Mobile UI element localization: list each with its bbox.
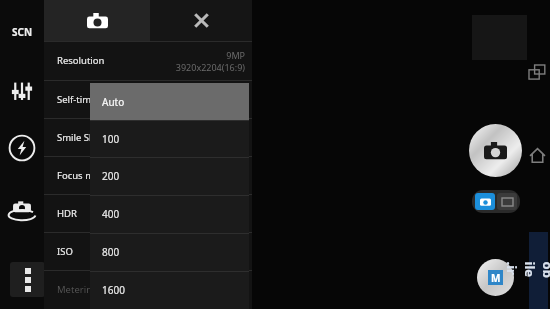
- button[interactable]: Focus mode: [44, 156, 252, 194]
- staticText: Auto: [102, 95, 125, 109]
- staticText: M: [491, 271, 501, 285]
- button[interactable]: ISO: [44, 232, 252, 270]
- staticText: Resolution: [57, 54, 105, 67]
- staticText: 3920x2204(16:9): [175, 61, 245, 73]
- button[interactable]: Flash: [8, 134, 36, 162]
- staticText: 1600: [102, 283, 125, 297]
- staticText: 400: [102, 207, 120, 221]
- staticText: ISO: [57, 245, 73, 258]
- button[interactable]: 100: [90, 120, 249, 157]
- button[interactable]: Camera settings tab: [44, 0, 150, 41]
- button[interactable]: Resolution: [44, 41, 252, 80]
- button[interactable]: Tools tab: [150, 0, 252, 41]
- button[interactable]: Smile Shutter: [44, 118, 252, 156]
- staticText: 200: [102, 169, 120, 183]
- button[interactable]: Recents: [529, 65, 546, 80]
- button[interactable]: 400: [90, 195, 249, 233]
- staticText: HDR: [57, 207, 77, 220]
- button[interactable]: Shutter: [469, 124, 522, 177]
- button[interactable]: Gallery: [477, 259, 514, 296]
- button[interactable]: Scene mode: [5, 20, 39, 44]
- staticText: mobile.ir: [502, 261, 550, 280]
- button[interactable]: Metering: [44, 270, 252, 308]
- staticText: 9MP: [226, 49, 245, 61]
- button[interactable]: Self-timer: [44, 80, 252, 118]
- staticText: Focus mode: [57, 169, 111, 182]
- button[interactable]: Auto: [90, 83, 249, 120]
- staticText: 100: [102, 132, 120, 146]
- button[interactable]: More options: [10, 262, 45, 297]
- button[interactable]: Photo video mode toggle: [472, 190, 520, 213]
- button[interactable]: Switch camera: [6, 194, 38, 226]
- staticText: SCN: [12, 25, 33, 39]
- staticText: Smile Shutter: [57, 131, 117, 144]
- staticText: Self-timer: [57, 93, 101, 106]
- button[interactable]: 200: [90, 157, 249, 195]
- button[interactable]: HDR: [44, 194, 252, 232]
- staticText: Metering: [57, 283, 98, 296]
- button[interactable]: 1600: [90, 271, 249, 309]
- button[interactable]: Adjust settings: [8, 77, 36, 105]
- button[interactable]: Home: [529, 147, 546, 164]
- button[interactable]: 800: [90, 233, 249, 271]
- staticText: 800: [102, 245, 120, 259]
